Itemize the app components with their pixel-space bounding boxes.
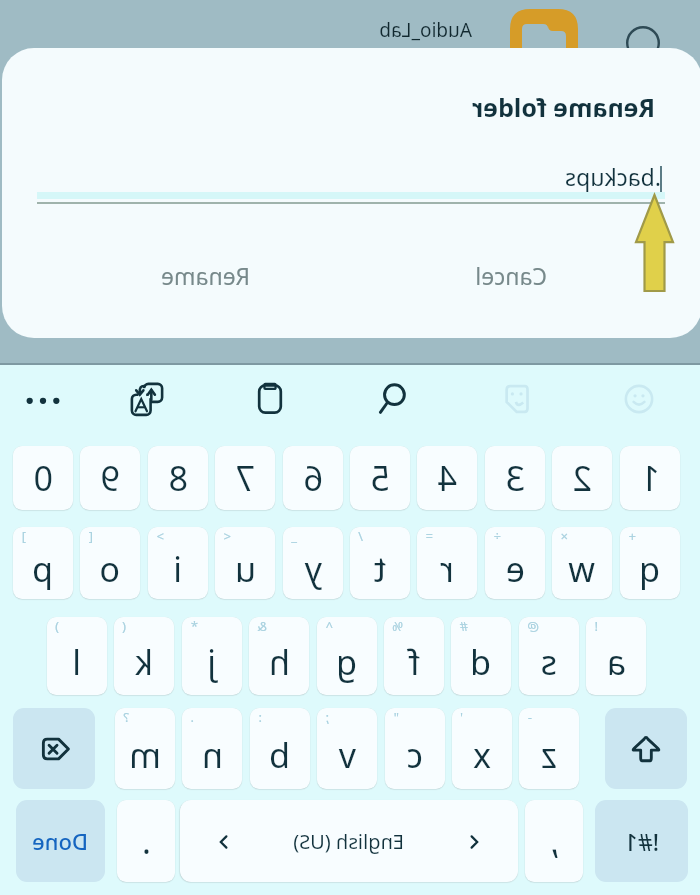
- button[interactable]: 1: [620, 446, 680, 510]
- staticText: <: [223, 527, 231, 545]
- staticText: _: [291, 527, 297, 545]
- staticText: d: [470, 639, 491, 685]
- button[interactable]: /: [350, 527, 410, 599]
- button[interactable]: Clipboard: [240, 365, 300, 433]
- button[interactable]: ?: [115, 708, 175, 789]
- staticText: @: [527, 617, 539, 635]
- staticText: 3: [505, 455, 525, 501]
- staticText: e: [505, 546, 525, 592]
- staticText: 4: [437, 455, 457, 501]
- staticText: English (US): [293, 828, 404, 855]
- staticText: g: [336, 639, 357, 685]
- staticText: 0: [33, 455, 53, 501]
- staticText: z: [541, 732, 557, 778]
- staticText: x: [473, 732, 491, 778]
- button[interactable]: %: [384, 617, 444, 695]
- button[interactable]: 7: [215, 446, 275, 510]
- staticText: 7: [235, 455, 255, 501]
- button[interactable]: -: [519, 708, 579, 789]
- staticText: n: [201, 732, 223, 778]
- button[interactable]: :: [250, 708, 310, 789]
- button[interactable]: (: [114, 617, 174, 695]
- staticText: p: [32, 546, 53, 592]
- staticText: f: [408, 639, 420, 685]
- button[interactable]: ,: [525, 800, 583, 882]
- button[interactable]: !: [586, 617, 646, 695]
- staticText: ^: [325, 617, 333, 635]
- staticText: 8: [168, 455, 188, 501]
- staticText: v: [338, 732, 356, 778]
- button[interactable]: >: [148, 527, 208, 599]
- button[interactable]: Shift: [605, 708, 687, 789]
- button[interactable]: Search: [363, 365, 423, 433]
- button[interactable]: ×: [552, 527, 612, 599]
- staticText: r: [439, 546, 454, 592]
- staticText: y: [304, 546, 322, 592]
- button[interactable]: =: [417, 527, 477, 599]
- staticText: l: [72, 639, 81, 685]
- staticText: #: [459, 617, 468, 635]
- staticText: =: [425, 527, 433, 545]
- staticText: Rename: [161, 260, 250, 291]
- button[interactable]: ": [385, 708, 445, 789]
- staticText: ?: [123, 708, 129, 726]
- staticText: :: [258, 708, 262, 726]
- staticText: &: [257, 617, 267, 635]
- button[interactable]: English (US): [180, 800, 518, 882]
- button[interactable]: &: [249, 617, 309, 695]
- staticText: >: [156, 527, 164, 545]
- staticText: Rename folder: [471, 90, 655, 124]
- button[interactable]: 5: [350, 446, 410, 510]
- staticText: 1: [640, 455, 660, 501]
- button[interactable]: !#1: [595, 800, 688, 882]
- staticText: b: [269, 732, 290, 778]
- button[interactable]: .: [117, 800, 175, 882]
- staticText: Done: [32, 826, 88, 856]
- button[interactable]: _: [283, 527, 343, 599]
- staticText: q: [639, 546, 660, 592]
- button[interactable]: Emoji: [609, 365, 669, 433]
- button[interactable]: ]: [13, 527, 73, 599]
- button[interactable]: Rename: [145, 247, 266, 304]
- staticText: j: [207, 639, 216, 685]
- button[interactable]: ;: [317, 708, 377, 789]
- button[interactable]: +: [620, 527, 680, 599]
- button[interactable]: 8: [148, 446, 208, 510]
- button[interactable]: 9: [80, 446, 140, 510]
- button[interactable]: ÷: [485, 527, 545, 599]
- button[interactable]: .: [182, 708, 242, 789]
- staticText: *: [190, 617, 198, 635]
- button[interactable]: *: [182, 617, 242, 695]
- button[interactable]: Backspace: [13, 708, 95, 789]
- staticText: 9: [100, 455, 120, 501]
- button[interactable]: Done: [16, 800, 105, 882]
- staticText: Audio_Lab: [379, 17, 472, 43]
- staticText: a: [606, 639, 626, 685]
- button[interactable]: Cancel: [459, 247, 563, 304]
- staticText: ": [393, 708, 399, 726]
- button[interactable]: <: [215, 527, 275, 599]
- button[interactable]: ): [47, 617, 107, 695]
- button[interactable]: Translate: [117, 365, 177, 433]
- staticText: %: [392, 617, 403, 635]
- staticText: !: [594, 617, 598, 635]
- button[interactable]: 0: [13, 446, 73, 510]
- button[interactable]: ': [452, 708, 512, 789]
- staticText: t: [373, 546, 386, 592]
- staticText: /: [358, 527, 363, 545]
- button[interactable]: 2: [552, 446, 612, 510]
- button[interactable]: ^: [317, 617, 377, 695]
- staticText: s: [540, 639, 557, 685]
- button[interactable]: 3: [485, 446, 545, 510]
- staticText: c: [406, 732, 423, 778]
- button[interactable]: @: [519, 617, 579, 695]
- button[interactable]: [: [80, 527, 140, 599]
- staticText: ;: [325, 708, 329, 726]
- button[interactable]: 4: [417, 446, 477, 510]
- button[interactable]: 6: [283, 446, 343, 510]
- staticText: ×: [560, 527, 568, 545]
- staticText: .: [141, 818, 151, 864]
- button[interactable]: More: [13, 365, 73, 433]
- button[interactable]: Stickers: [486, 365, 546, 433]
- button[interactable]: #: [451, 617, 511, 695]
